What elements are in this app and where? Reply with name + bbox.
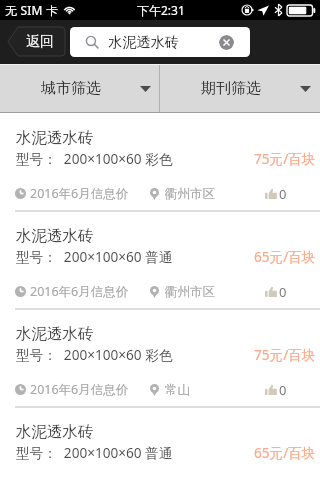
staticText: 返回 bbox=[26, 33, 54, 51]
staticText: 水泥透水砖 bbox=[16, 128, 94, 148]
button[interactable]: 期刊筛选 bbox=[160, 65, 320, 112]
staticText: 型号： 200×100×60 普通 bbox=[16, 443, 173, 462]
staticText: 65元/百块 bbox=[254, 443, 316, 462]
button[interactable]: 水泥透水砖 bbox=[0, 113, 320, 211]
staticText: 0 bbox=[279, 381, 287, 399]
staticText: 城市筛选 bbox=[41, 79, 101, 98]
staticText: 下午2:31 bbox=[137, 2, 185, 18]
staticText: 型号： 200×100×60 彩色 bbox=[16, 345, 173, 364]
button[interactable]: 清除 bbox=[219, 35, 234, 50]
staticText: 型号： 200×100×60 普通 bbox=[16, 247, 173, 266]
staticText: 衢州市区 bbox=[165, 186, 215, 202]
staticText: 衢州市区 bbox=[165, 284, 215, 300]
staticText: 水泥透水砖 bbox=[108, 33, 179, 51]
staticText: 0 bbox=[279, 283, 287, 301]
button[interactable]: 水泥透水砖 bbox=[70, 27, 250, 57]
button[interactable]: 水泥透水砖 bbox=[0, 211, 320, 309]
button[interactable]: 城市筛选 bbox=[0, 65, 159, 112]
button[interactable]: 水泥透水砖 bbox=[0, 309, 320, 407]
staticText: 75元/百块 bbox=[254, 345, 316, 364]
button[interactable]: 水泥透水砖 bbox=[0, 407, 320, 480]
staticText: 型号： 200×100×60 彩色 bbox=[16, 149, 173, 168]
button[interactable]: 返回 bbox=[7, 26, 66, 57]
staticText: 2016年6月信息价 bbox=[30, 381, 129, 398]
staticText: 65元/百块 bbox=[254, 247, 316, 266]
staticText: 水泥透水砖 bbox=[16, 422, 94, 442]
staticText: 常山 bbox=[165, 382, 190, 398]
staticText: 水泥透水砖 bbox=[16, 226, 94, 246]
staticText: 0 bbox=[279, 185, 287, 203]
staticText: 2016年6月信息价 bbox=[30, 283, 129, 300]
staticText: 期刊筛选 bbox=[201, 79, 261, 98]
staticText: 75元/百块 bbox=[254, 149, 316, 168]
staticText: 水泥透水砖 bbox=[16, 324, 94, 344]
staticText: 2016年6月信息价 bbox=[30, 185, 129, 202]
staticText: 无 SIM 卡 bbox=[5, 2, 59, 18]
